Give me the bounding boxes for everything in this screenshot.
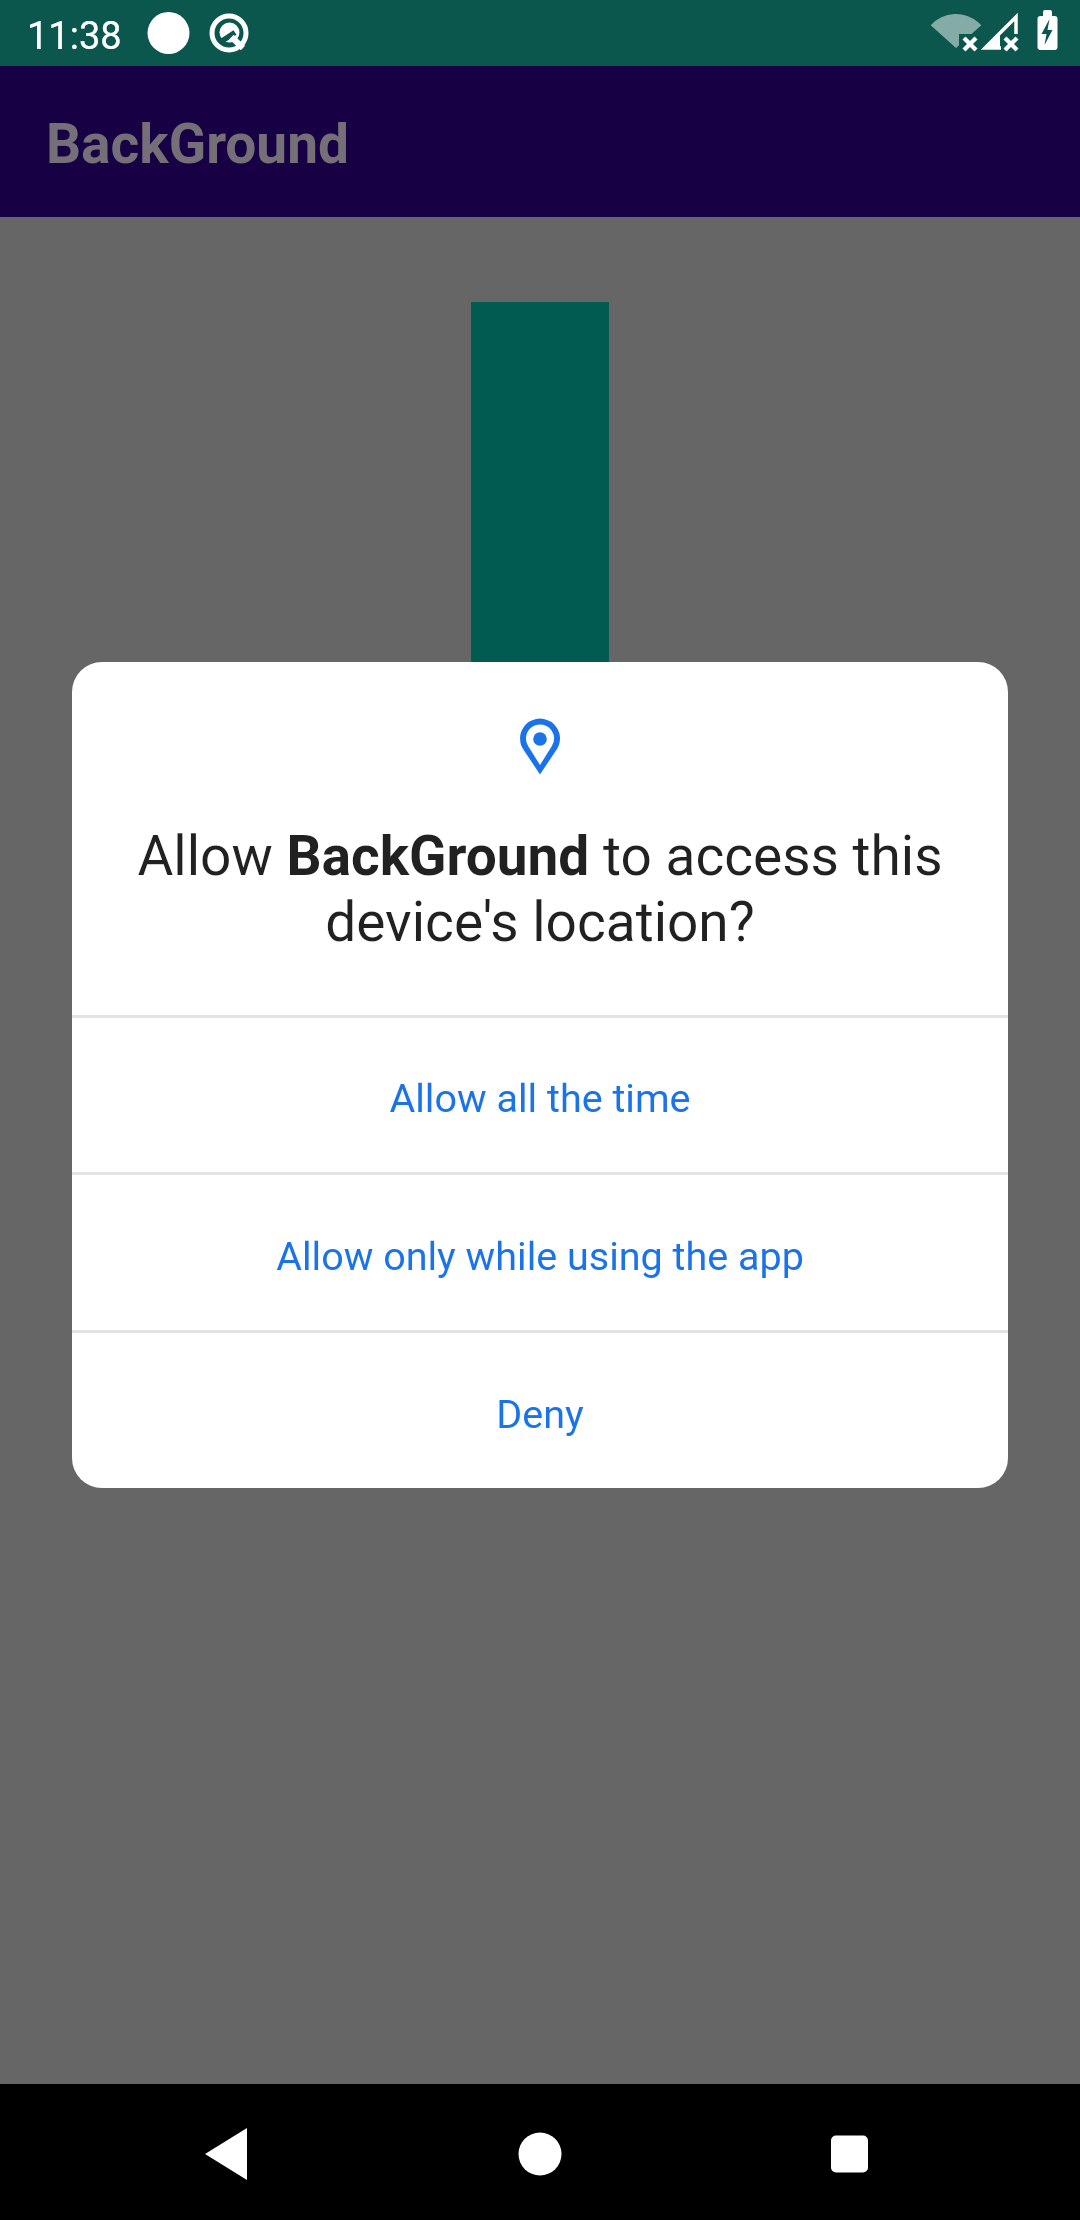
staticText: Allow BackGround to access this device's… — [128, 824, 952, 955]
staticText: BackGround — [46, 112, 349, 176]
staticText: Allow all the time — [389, 1075, 691, 1121]
staticText: 11:38 — [27, 14, 122, 59]
button[interactable]: Allow all the time — [72, 1018, 1008, 1172]
button[interactable]: Allow only while using the app — [72, 1175, 1008, 1330]
staticText: Allow only while using the app — [276, 1233, 804, 1279]
button[interactable]: Deny — [72, 1333, 1008, 1488]
staticText: Deny — [496, 1391, 584, 1437]
